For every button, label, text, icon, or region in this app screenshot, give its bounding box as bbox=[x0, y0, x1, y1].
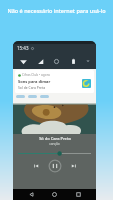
staticText: Sol de Cara Preta bbox=[18, 85, 46, 90]
button[interactable]: Brightness bbox=[51, 56, 61, 66]
button[interactable]: Action bbox=[16, 95, 25, 98]
button[interactable]: Action bbox=[40, 95, 49, 98]
staticText: Só do Cara Preto bbox=[39, 136, 71, 141]
button[interactable]: Battery bbox=[68, 56, 78, 66]
staticText: Sons para dimar bbox=[18, 79, 51, 84]
staticText: Cifras Club • agora bbox=[22, 73, 50, 77]
button[interactable]: Home bbox=[49, 189, 60, 200]
button[interactable]: Wi-Fi bbox=[18, 56, 28, 66]
button[interactable]: Next bbox=[68, 160, 80, 172]
button[interactable]: Cifras Club • agora bbox=[15, 70, 94, 93]
staticText: canção bbox=[49, 142, 60, 146]
button[interactable]: Pause bbox=[48, 159, 62, 173]
staticText: 15:43 bbox=[17, 45, 29, 51]
button[interactable]: Recents bbox=[73, 189, 84, 200]
staticText: Não é necessário internet para usá-lo bbox=[7, 7, 106, 14]
button[interactable]: Mobile data bbox=[35, 56, 45, 66]
button[interactable]: Previous bbox=[30, 160, 42, 172]
button[interactable]: Album art bbox=[82, 79, 91, 88]
button[interactable]: Action bbox=[28, 95, 37, 98]
button[interactable]: Seek bar bbox=[18, 151, 91, 156]
button[interactable]: Back bbox=[26, 189, 37, 200]
button[interactable]: Expand bbox=[84, 57, 92, 65]
